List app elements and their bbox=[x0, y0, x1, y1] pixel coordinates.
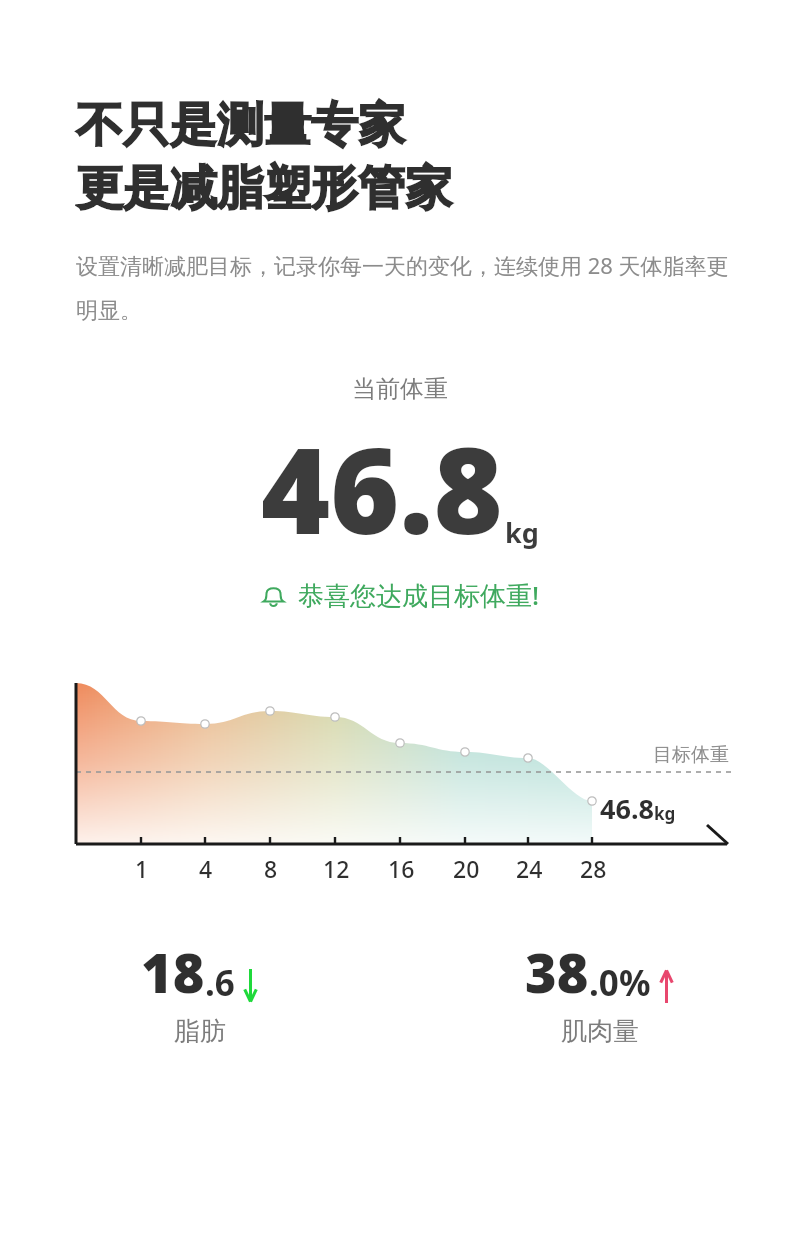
staticText: 20 bbox=[453, 853, 480, 884]
staticText: 16 bbox=[388, 853, 415, 884]
staticText: 4 bbox=[199, 853, 213, 884]
staticText: kg bbox=[505, 514, 539, 551]
staticText: 8 bbox=[264, 853, 278, 884]
staticText: 恭喜您达成目标体重! bbox=[298, 577, 540, 613]
staticText: 28 bbox=[580, 853, 607, 884]
staticText: 46.8 bbox=[261, 408, 503, 569]
staticText: 当前体重 bbox=[0, 374, 800, 404]
other: Goal reached notification bbox=[260, 582, 287, 609]
staticText: 18 bbox=[141, 935, 205, 1009]
staticText: % bbox=[619, 959, 651, 1007]
button[interactable]: 38 bbox=[400, 935, 800, 1048]
staticText: 肌肉量 bbox=[561, 1015, 639, 1048]
staticText: 12 bbox=[323, 853, 350, 884]
other: Increase bbox=[658, 969, 675, 1003]
staticText: kg bbox=[654, 802, 676, 825]
staticText: 不只是测量专家 bbox=[76, 96, 405, 155]
staticText: 目标体重 bbox=[653, 743, 729, 767]
other: Decrease bbox=[242, 969, 259, 1003]
staticText: 1 bbox=[135, 853, 149, 884]
staticText: 设置清晰减肥目标，记录你每一天的变化，连续使用 28 天体脂率更明显。 bbox=[76, 250, 738, 324]
button[interactable]: 18 bbox=[0, 935, 400, 1048]
staticText: 脂肪 bbox=[174, 1015, 226, 1048]
button[interactable]: Goal reached notification bbox=[0, 577, 800, 613]
staticText: .6 bbox=[205, 959, 235, 1007]
staticText: 46.8 bbox=[600, 790, 654, 827]
staticText: 更是减脂塑形管家 bbox=[76, 159, 452, 218]
staticText: 24 bbox=[516, 853, 543, 884]
staticText: .0 bbox=[589, 959, 619, 1007]
staticText: 38 bbox=[525, 935, 589, 1009]
